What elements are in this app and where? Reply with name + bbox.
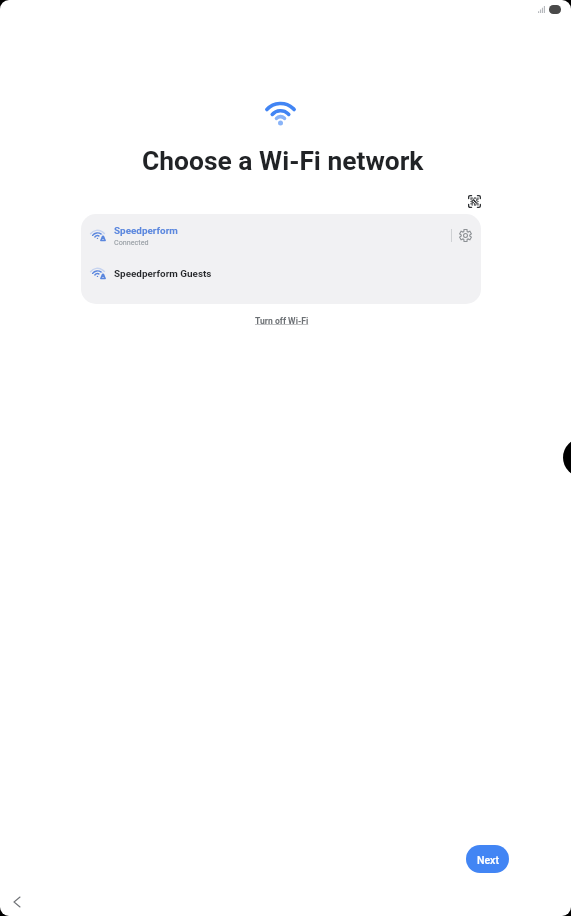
button[interactable]: Speedperform Guests [81,257,481,290]
button[interactable]: Next [466,845,509,873]
button[interactable]: Back [6,891,28,913]
button[interactable]: Scan QR code [463,190,485,212]
staticText: Choose a Wi-Fi network [142,146,424,177]
staticText: Speedperform Guests [114,268,212,280]
staticText: Speedperform [114,225,178,237]
staticText: Connected [114,238,149,246]
staticText: Next [477,854,499,866]
button[interactable]: Network settings [456,226,475,245]
button[interactable]: Speedperform [81,214,481,257]
button[interactable]: Turn off Wi-Fi [253,314,311,328]
staticText: Turn off Wi-Fi [255,316,309,326]
